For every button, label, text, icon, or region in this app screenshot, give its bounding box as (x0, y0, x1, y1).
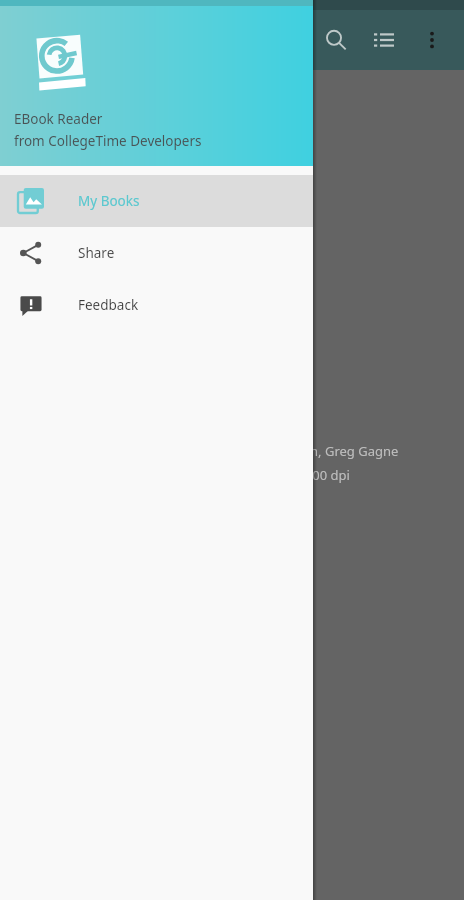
button[interactable]: More options (408, 16, 456, 64)
button[interactable]: Search (312, 16, 360, 64)
button[interactable]: Feedback (0, 279, 313, 331)
staticText: Silberschatz, Galvin, Greg Gagne (200, 442, 399, 460)
staticText: PDF (9th edition) 600 dpi (200, 466, 350, 484)
staticText: from CollegeTime Developers (14, 132, 202, 150)
staticText: Feedback (78, 296, 139, 314)
staticText: EBook Reader (14, 110, 103, 128)
button[interactable]: My Books (0, 175, 313, 227)
staticText: My Books (78, 192, 140, 210)
button[interactable]: Share (0, 227, 313, 279)
staticText: Share (78, 244, 115, 262)
button[interactable]: List view (360, 16, 408, 64)
